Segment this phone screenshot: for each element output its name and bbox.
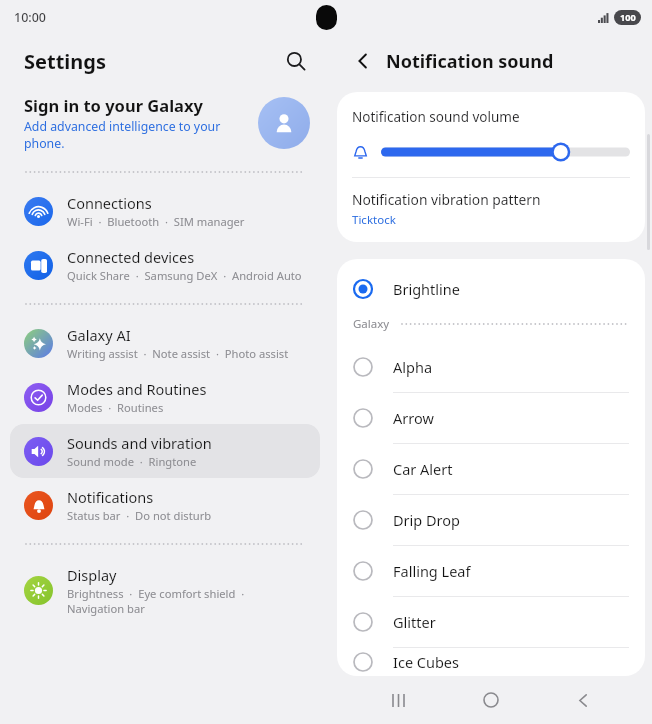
staticText: Galaxy <box>353 316 390 332</box>
button[interactable]: Galaxy AI <box>10 316 320 370</box>
button[interactable]: Notification vibration pattern <box>352 190 630 228</box>
button[interactable]: Back <box>560 677 606 723</box>
staticText: Modes · Routines <box>67 400 164 415</box>
staticText: Wi-Fi · Bluetooth · SIM manager <box>67 214 245 229</box>
staticText: Connections <box>67 193 152 213</box>
button[interactable]: Notifications <box>10 478 320 532</box>
staticText: Quick Share · Samsung DeX · Android Auto <box>67 268 302 283</box>
button[interactable]: Alpha <box>337 342 645 392</box>
button[interactable]: Ice Cubes <box>337 648 645 676</box>
staticText: Sound mode · Ringtone <box>67 454 197 469</box>
staticText: Car Alert <box>393 459 453 479</box>
staticText: Connected devices <box>67 247 195 267</box>
button[interactable]: Falling Leaf <box>337 546 645 596</box>
button[interactable]: Arrow <box>337 393 645 443</box>
staticText: Glitter <box>393 612 436 632</box>
staticText: Display <box>67 565 117 585</box>
staticText: Drip Drop <box>393 510 460 530</box>
staticText: Notification vibration pattern <box>352 190 541 209</box>
button[interactable] <box>352 139 630 165</box>
button[interactable]: Recents <box>376 677 422 723</box>
staticText: Notification sound volume <box>352 108 520 126</box>
staticText: Sign in to your Galaxy <box>24 94 203 116</box>
button[interactable]: Connected devices <box>10 238 320 292</box>
button[interactable]: Connections <box>10 184 320 238</box>
button[interactable]: Drip Drop <box>337 495 645 545</box>
staticText: Ticktock <box>352 212 396 228</box>
staticText: Settings <box>24 48 106 75</box>
staticText: Alpha <box>393 357 433 377</box>
staticText: Notifications <box>67 487 154 507</box>
staticText: Status bar · Do not disturb <box>67 508 212 523</box>
staticText: Sounds and vibration <box>67 433 212 453</box>
staticText: 10:00 <box>14 9 47 26</box>
staticText: Brightline <box>393 279 460 299</box>
staticText: Add advanced intelligence to your phone. <box>24 118 258 152</box>
staticText: Galaxy AI <box>67 325 131 345</box>
button[interactable]: Sounds and vibration <box>10 424 320 478</box>
staticText: Notification sound <box>386 49 554 74</box>
button[interactable]: Glitter <box>337 597 645 647</box>
staticText: 100 <box>620 11 636 24</box>
staticText: Writing assist · Note assist · Photo ass… <box>67 346 289 361</box>
button[interactable]: Modes and Routines <box>10 370 320 424</box>
staticText: Arrow <box>393 408 434 428</box>
button[interactable]: Display <box>10 556 320 625</box>
button[interactable]: Sign in to your Galaxy <box>0 88 330 158</box>
staticText: Modes and Routines <box>67 379 207 399</box>
button[interactable]: Home <box>468 677 514 723</box>
button[interactable]: Car Alert <box>337 444 645 494</box>
button[interactable]: Brightline <box>337 271 645 307</box>
button[interactable]: Search <box>276 41 316 81</box>
staticText: Ice Cubes <box>393 652 459 672</box>
staticText: Falling Leaf <box>393 561 471 581</box>
button[interactable]: Back <box>346 44 380 78</box>
staticText: Brightness · Eye comfort shield · Naviga… <box>67 586 306 616</box>
